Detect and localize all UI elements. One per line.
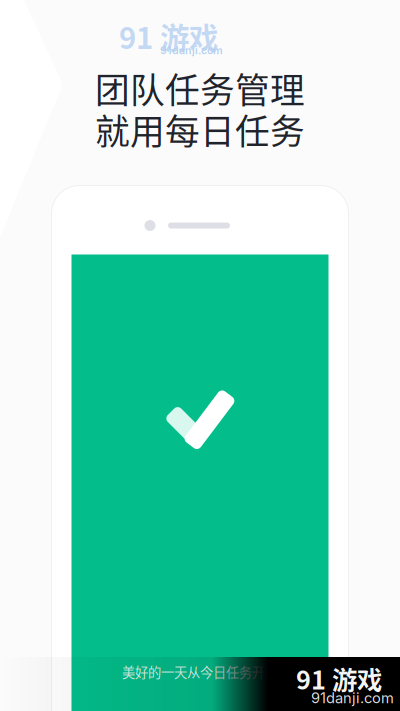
- staticText: 91danji.com: [311, 689, 394, 707]
- staticText: 团队任务管理: [95, 63, 305, 113]
- staticText: 91 游戏: [119, 15, 218, 57]
- staticText: 91danji.com: [160, 44, 223, 57]
- staticText: 91 游戏: [296, 660, 382, 697]
- staticText: 美好的一天从今日任务开始: [122, 662, 278, 681]
- staticText: 就用每日任务: [95, 104, 305, 154]
